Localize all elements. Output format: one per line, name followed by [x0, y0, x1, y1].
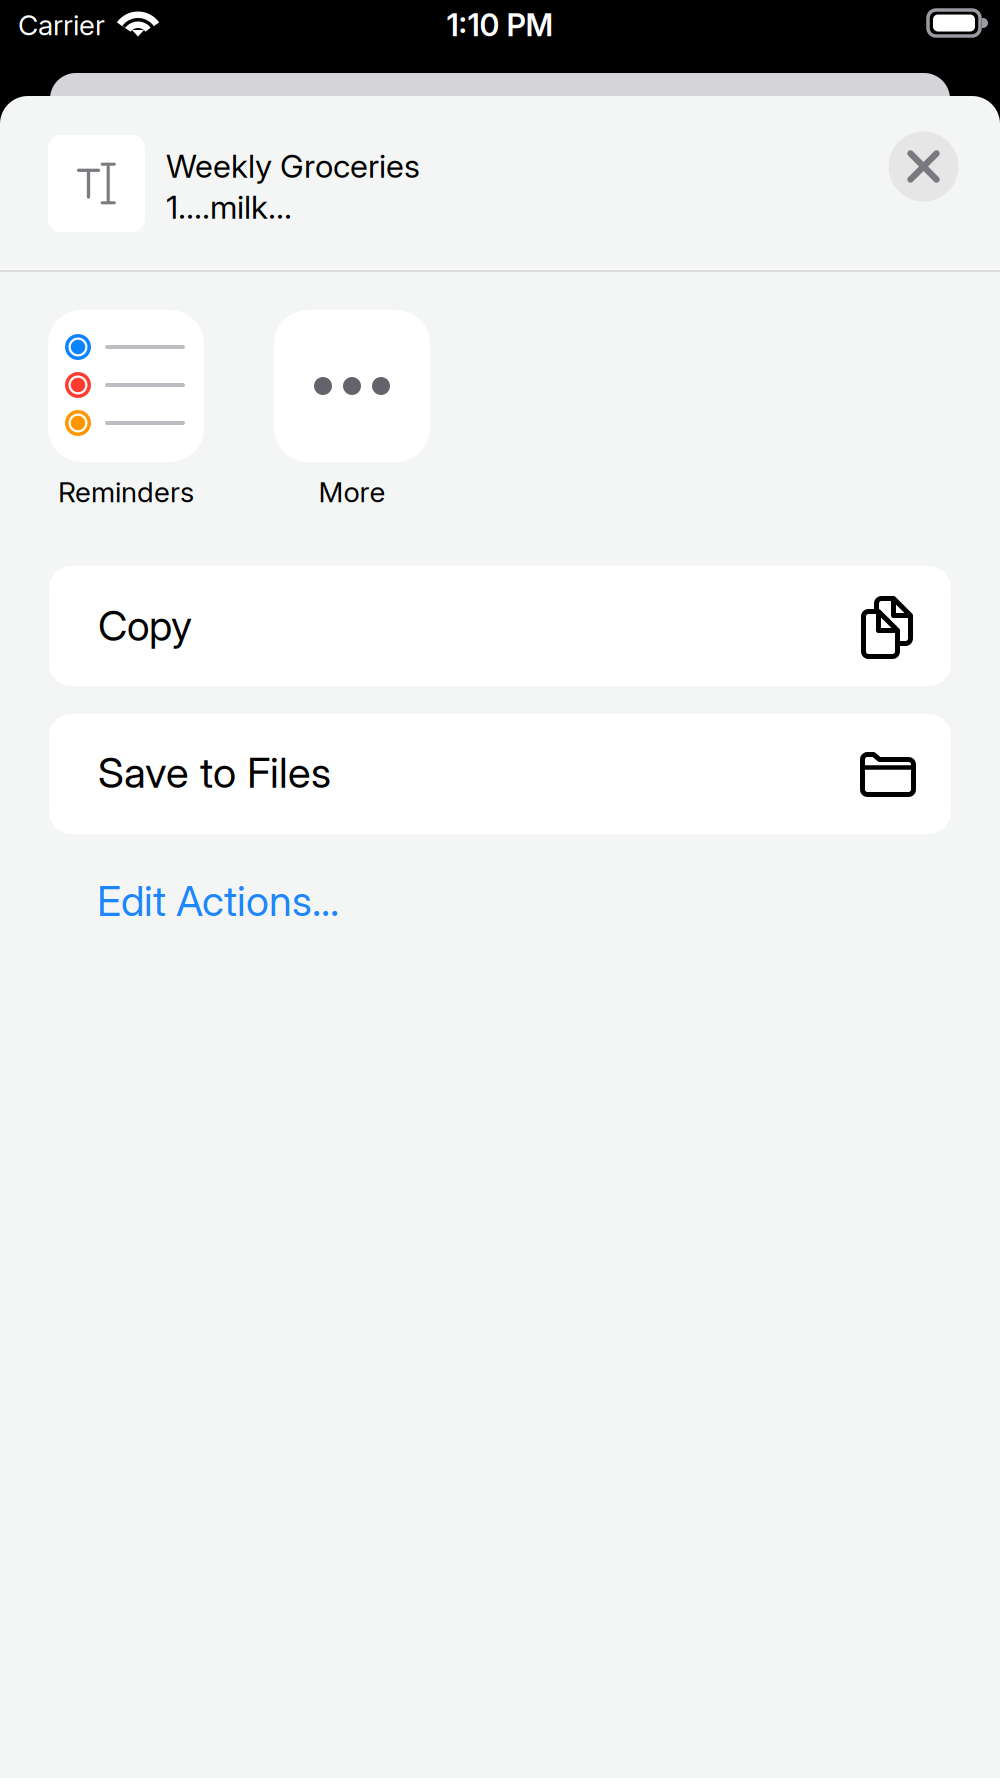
button[interactable]: Edit Actions...	[97, 873, 347, 929]
button[interactable]: Close	[888, 131, 958, 201]
staticText: Edit Actions...	[97, 876, 339, 926]
button[interactable]: Reminders	[48, 310, 204, 522]
staticText: 1....milk...	[166, 188, 292, 226]
staticText: Reminders	[58, 475, 194, 509]
staticText: Save to Files	[98, 747, 331, 798]
button[interactable]: More	[274, 310, 430, 522]
button[interactable]: Save to Files	[49, 714, 951, 834]
staticText: Carrier	[18, 8, 105, 42]
button[interactable]: Copy	[49, 566, 951, 686]
staticText: 1:10 PM	[446, 6, 553, 43]
staticText: Weekly Groceries	[166, 147, 420, 185]
staticText: Copy	[98, 601, 192, 651]
staticText: More	[318, 475, 385, 509]
